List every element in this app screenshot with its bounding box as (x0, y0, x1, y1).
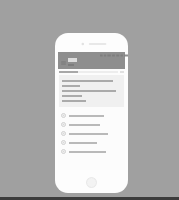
button[interactable] (58, 138, 125, 147)
button[interactable]: Open navigation menu (60, 59, 67, 66)
button[interactable] (58, 120, 125, 129)
button[interactable] (58, 111, 125, 120)
button[interactable] (58, 147, 125, 156)
button[interactable]: Home (86, 177, 97, 188)
button[interactable] (58, 129, 125, 138)
button[interactable] (59, 75, 124, 107)
